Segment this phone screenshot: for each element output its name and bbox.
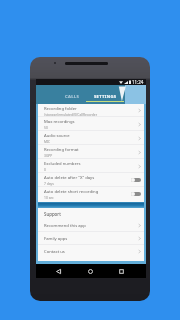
button[interactable]: SETTINGS <box>85 85 126 104</box>
button[interactable]: Recommend this app <box>38 219 144 232</box>
button[interactable]: Toggle <box>131 190 141 198</box>
staticText: 3GPP <box>44 153 53 157</box>
staticText: Recommend this app <box>44 223 86 229</box>
button[interactable]: Home <box>84 264 96 278</box>
staticText: 0 <box>44 167 46 171</box>
staticText: Recording folder <box>44 106 77 112</box>
button[interactable]: Auto delete after "X" days <box>38 173 144 187</box>
staticText: Contact us <box>44 249 65 255</box>
staticText: Auto delete after "X" days <box>44 175 95 181</box>
staticText: Support <box>44 211 61 217</box>
staticText: 7 days <box>44 181 54 185</box>
staticText: Audio source <box>44 133 70 139</box>
staticText: Max recordings <box>44 119 75 125</box>
button[interactable]: Recording format <box>38 145 144 159</box>
button[interactable]: Excluded numbers <box>38 159 144 173</box>
staticText: SETTINGS <box>94 94 117 100</box>
staticText: CALLS <box>65 94 80 100</box>
staticText: Family apps <box>44 236 68 242</box>
staticText: 10 sec <box>44 195 54 199</box>
staticText: MIC <box>44 139 51 143</box>
button[interactable]: Back <box>52 264 64 278</box>
button[interactable]: Recording folder <box>38 104 144 117</box>
button[interactable]: Max recordings <box>38 117 144 131</box>
staticText: 11:24 <box>132 79 144 85</box>
button[interactable]: Recents <box>115 264 127 278</box>
button[interactable]: Family apps <box>38 232 144 245</box>
button[interactable]: Toggle <box>131 176 141 184</box>
staticText: Excluded numbers <box>44 161 81 167</box>
button[interactable]: Auto delete short recording <box>38 187 144 201</box>
button[interactable]: CALLS <box>52 85 93 104</box>
staticText: 50 <box>44 125 48 129</box>
staticText: /storage/emulated/0/CallRecorder <box>44 112 98 116</box>
staticText: Recording format <box>44 147 79 153</box>
staticText: Auto delete short recording <box>44 189 99 195</box>
button[interactable]: Contact us <box>38 245 144 258</box>
button[interactable]: Audio source <box>38 131 144 145</box>
